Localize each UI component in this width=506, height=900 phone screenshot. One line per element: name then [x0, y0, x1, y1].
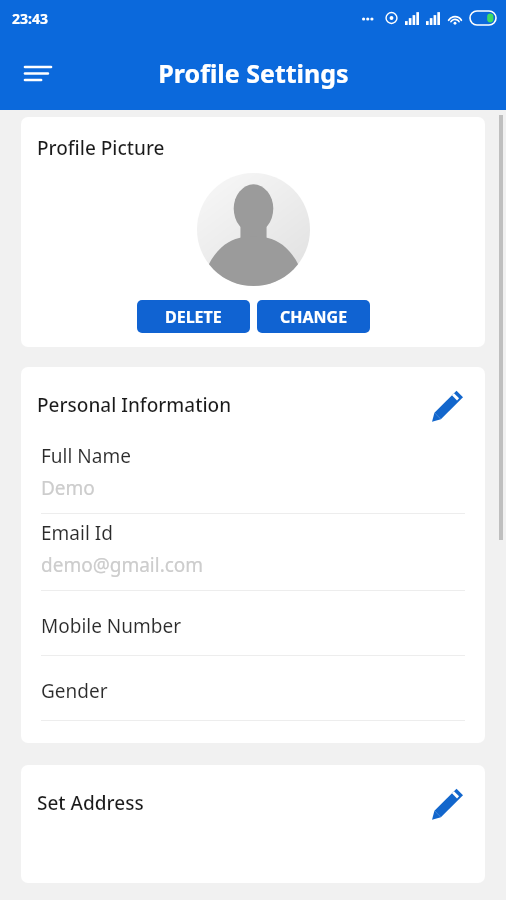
staticText: Set Address [37, 790, 144, 816]
button[interactable]: Edit address [427, 783, 467, 823]
staticText: 23:43 [12, 9, 48, 28]
staticText: demo@gmail.com [41, 552, 204, 578]
staticText: Full Name [41, 443, 131, 469]
staticText: DELETE [165, 306, 222, 328]
button[interactable]: CHANGE [257, 300, 370, 333]
staticText: CHANGE [280, 306, 348, 328]
button[interactable]: DELETE [137, 300, 250, 333]
button[interactable]: Gender [21, 656, 485, 721]
button[interactable]: Email Id [21, 514, 485, 591]
staticText: Email Id [41, 520, 113, 546]
staticText: Personal Information [37, 392, 232, 418]
button[interactable]: Mobile Number [21, 591, 485, 656]
staticText: Profile Picture [37, 135, 165, 161]
staticText: Profile Settings [158, 56, 349, 90]
button[interactable]: Open navigation menu [15, 50, 61, 96]
staticText: Demo [41, 475, 95, 501]
staticText: Mobile Number [41, 613, 182, 639]
button[interactable]: Full Name [21, 437, 485, 514]
staticText: Gender [41, 678, 108, 704]
button[interactable]: Edit personal information [427, 385, 467, 425]
